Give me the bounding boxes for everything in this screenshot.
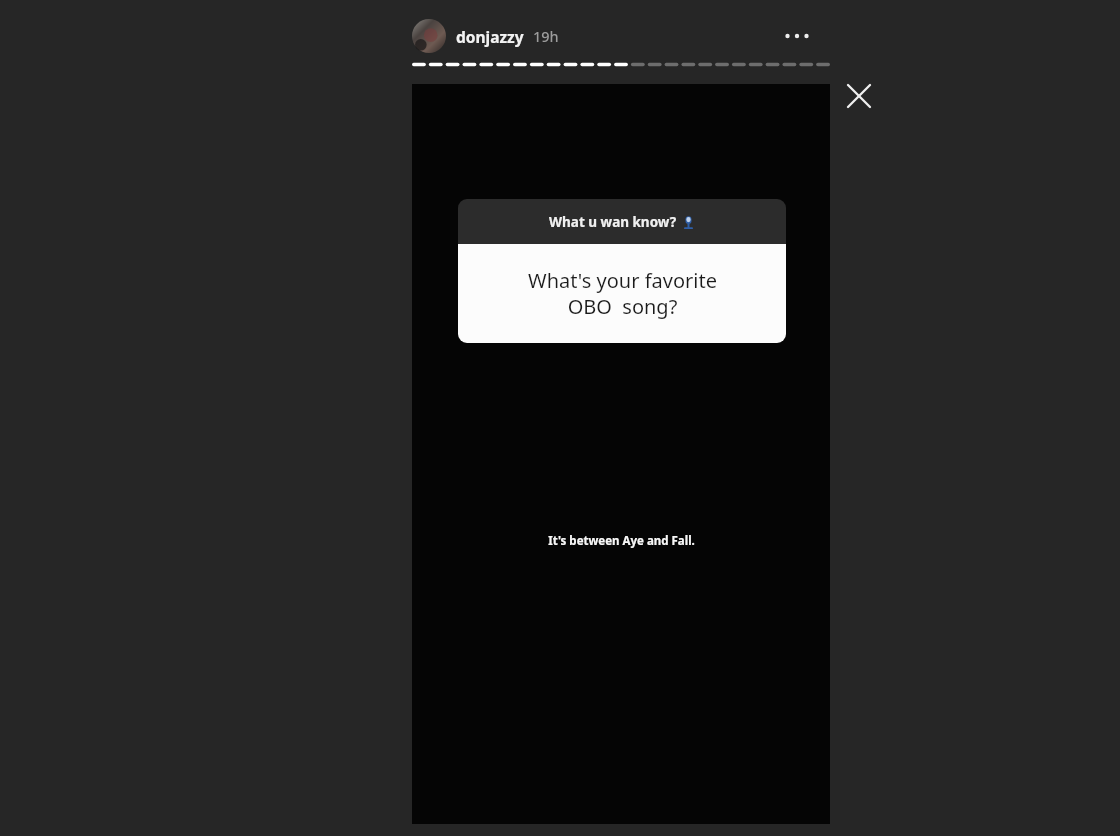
staticText: It's between Aye and Fall. xyxy=(548,533,695,549)
staticText: 19h xyxy=(533,26,559,46)
staticText: What's your favorite OBO song? xyxy=(528,267,717,320)
button[interactable]: donjazzy xyxy=(412,19,565,53)
button[interactable]: More options xyxy=(777,16,817,56)
staticText: What u wan know? xyxy=(549,213,677,231)
button[interactable]: What u wan know? xyxy=(458,199,786,343)
button[interactable]: Close story xyxy=(837,74,881,118)
staticText: donjazzy xyxy=(456,26,524,47)
